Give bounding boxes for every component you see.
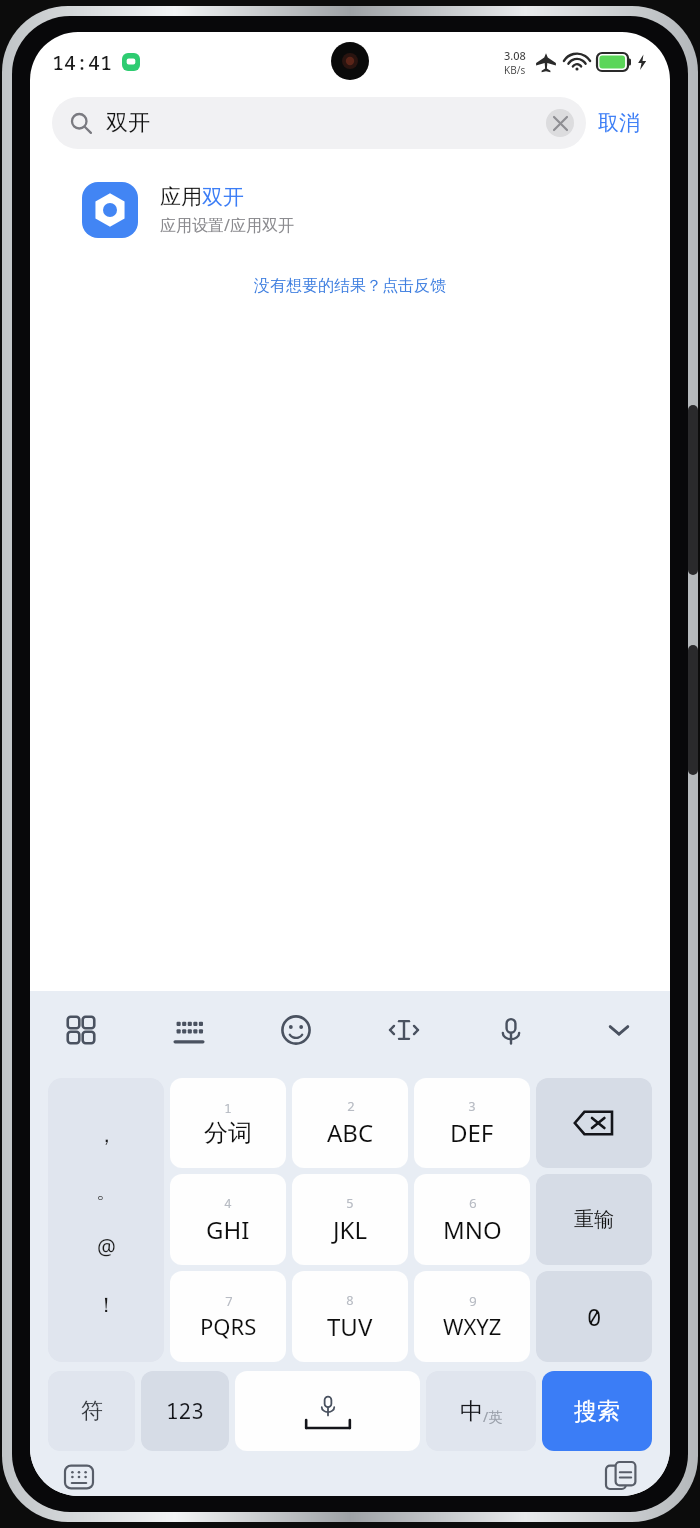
button[interactable]: 5 xyxy=(292,1174,408,1265)
staticText: 4 xyxy=(224,1194,232,1212)
staticText: 应用 xyxy=(160,184,202,210)
staticText: 2 xyxy=(347,1097,355,1115)
staticText: 9 xyxy=(469,1292,477,1310)
staticText: 没有想要的结果？点击反馈 xyxy=(254,276,446,296)
button[interactable]: 应用 xyxy=(30,176,670,244)
staticText: 6 xyxy=(469,1194,477,1212)
button[interactable]: Emoji xyxy=(267,1001,325,1059)
staticText: WXYZ xyxy=(443,1311,502,1341)
button[interactable]: 4 xyxy=(170,1174,286,1265)
button[interactable]: 搜索 xyxy=(542,1371,652,1451)
staticText: 7 xyxy=(225,1292,233,1310)
button[interactable]: 9 xyxy=(414,1271,530,1362)
button[interactable]: 8 xyxy=(292,1271,408,1362)
staticText: ！ xyxy=(96,1292,117,1318)
staticText: 符 xyxy=(81,1397,103,1425)
staticText: 重输 xyxy=(574,1207,614,1232)
button[interactable]: 7 xyxy=(170,1271,286,1362)
button[interactable]: 双开 xyxy=(52,97,586,149)
staticText: KB/s xyxy=(504,63,526,77)
button[interactable]: 中 xyxy=(426,1371,536,1451)
staticText: 3.08 xyxy=(504,48,526,63)
staticText: 搜索 xyxy=(574,1397,620,1426)
button[interactable]: ， xyxy=(48,1078,164,1362)
staticText: ABC xyxy=(327,1116,374,1149)
staticText: PQRS xyxy=(200,1311,257,1341)
staticText: 5 xyxy=(346,1194,354,1212)
staticText: 0 xyxy=(587,1300,602,1333)
staticText: 14:41 xyxy=(52,49,112,76)
staticText: JKL xyxy=(333,1213,367,1246)
staticText: DEF xyxy=(450,1116,494,1149)
staticText: TUV xyxy=(327,1310,373,1343)
button[interactable]: 0 xyxy=(536,1271,652,1362)
staticText: 123 xyxy=(166,1397,204,1426)
staticText: @ xyxy=(97,1233,116,1262)
button[interactable]: Keyboard layouts xyxy=(52,1001,110,1059)
button[interactable]: Clipboard xyxy=(598,1457,644,1496)
button[interactable]: 符 xyxy=(48,1371,135,1451)
button[interactable]: 2 xyxy=(292,1078,408,1168)
button[interactable]: Clear search xyxy=(546,109,574,137)
staticText: 。 xyxy=(96,1178,117,1204)
staticText: 8 xyxy=(346,1291,354,1309)
button[interactable]: Edit text xyxy=(375,1001,433,1059)
button[interactable]: Hide keyboard xyxy=(590,1001,648,1059)
staticText: MNO xyxy=(443,1213,502,1246)
button[interactable]: Keyboard settings xyxy=(56,1457,102,1496)
staticText: 双开 xyxy=(106,109,150,137)
staticText: 应用设置/应用双开 xyxy=(160,214,294,236)
button[interactable]: 1 xyxy=(170,1078,286,1168)
staticText: 中 xyxy=(460,1397,483,1426)
button[interactable]: Voice input xyxy=(482,1001,540,1059)
staticText: 3 xyxy=(468,1097,476,1115)
staticText: ， xyxy=(96,1122,117,1148)
button[interactable]: 123 xyxy=(141,1371,229,1451)
staticText: GHI xyxy=(206,1213,250,1246)
button[interactable] xyxy=(536,1078,652,1168)
button[interactable]: 重输 xyxy=(536,1174,652,1265)
button[interactable]: 6 xyxy=(414,1174,530,1265)
staticText: 取消 xyxy=(598,110,640,136)
staticText: /英 xyxy=(483,1407,503,1426)
staticText: 双开 xyxy=(202,184,244,210)
button[interactable]: 3 xyxy=(414,1078,530,1168)
staticText: 1 xyxy=(224,1099,232,1117)
button[interactable]: Keyboard type xyxy=(160,1001,218,1059)
button[interactable]: 取消 xyxy=(586,102,652,144)
staticText: 分词 xyxy=(204,1118,252,1148)
button[interactable] xyxy=(235,1371,420,1451)
button[interactable]: 没有想要的结果？点击反馈 xyxy=(240,270,460,302)
